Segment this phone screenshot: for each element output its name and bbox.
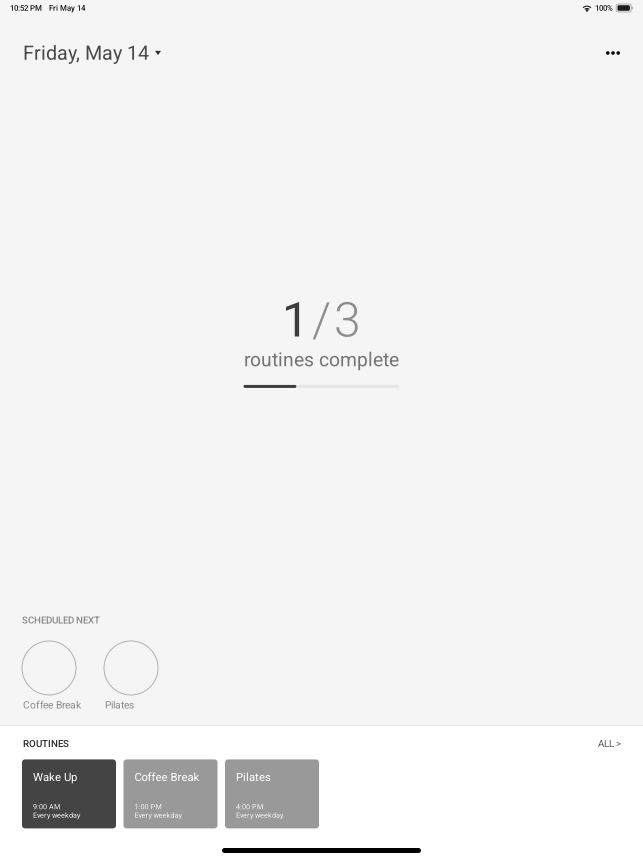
button[interactable]: Pilates: [225, 759, 319, 828]
staticText: 4:00 PM: [236, 802, 263, 811]
staticText: Pilates: [105, 699, 134, 711]
staticText: 3: [334, 292, 361, 348]
button[interactable]: Pilates: [104, 641, 186, 711]
staticText: ALL >: [598, 738, 621, 749]
staticText: 100%: [595, 3, 613, 13]
staticText: 9:00 AM: [33, 802, 60, 811]
staticText: Friday, May 14: [23, 41, 149, 64]
staticText: Fri May 14: [49, 3, 85, 13]
button[interactable]: Coffee Break: [22, 641, 104, 711]
button[interactable]: Friday, May 14: [23, 33, 161, 72]
staticText: SCHEDULED NEXT: [22, 615, 100, 626]
button[interactable]: More options: [597, 42, 629, 64]
staticText: Every weekday: [236, 811, 283, 819]
button[interactable]: Coffee Break: [123, 759, 217, 828]
button[interactable]: Wake Up: [22, 759, 116, 828]
staticText: Every weekday: [33, 811, 80, 819]
staticText: routines complete: [244, 348, 399, 371]
staticText: Coffee Break: [134, 770, 199, 784]
staticText: /: [312, 292, 331, 348]
staticText: 1: [282, 292, 309, 348]
staticText: ROUTINES: [23, 738, 69, 749]
staticText: Pilates: [236, 770, 271, 784]
staticText: Wake Up: [33, 770, 77, 784]
staticText: Coffee Break: [23, 699, 81, 711]
staticText: 10:52 PM: [10, 3, 42, 13]
button[interactable]: ALL >: [598, 738, 621, 749]
staticText: 1:00 PM: [134, 802, 161, 811]
staticText: Every weekday: [134, 811, 181, 819]
